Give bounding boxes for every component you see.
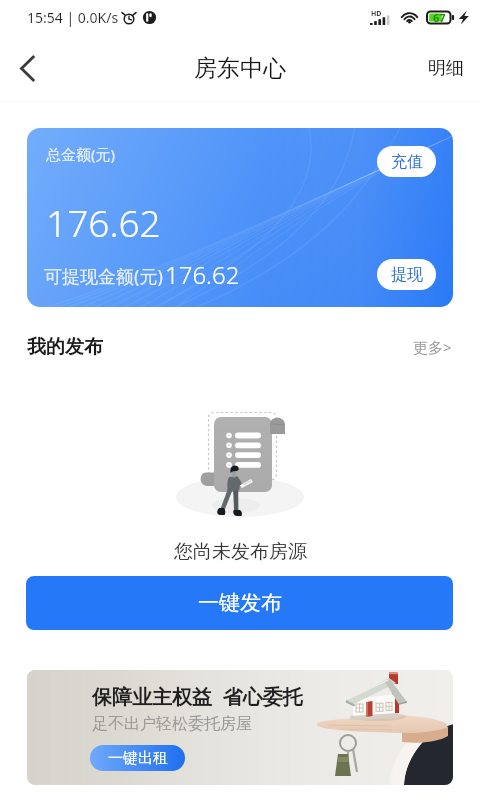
button[interactable]: 明细 [410,41,480,96]
staticText: 可提现金额(元) [44,264,163,289]
button[interactable]: Back [0,41,54,95]
staticText: 您尚未发布房源 [174,540,307,564]
button[interactable]: 提现 [377,259,436,290]
button[interactable]: 更多> [409,333,456,361]
button[interactable]: 保障业主权益 省心委托 [27,670,453,785]
staticText: 我的发布 [27,335,103,359]
staticText: 一键出租 [108,749,168,768]
staticText: 明细 [428,57,464,80]
staticText: 提现 [391,265,423,285]
staticText: 保障业主权益 省心委托 [92,683,303,710]
staticText: 一键发布 [198,590,282,616]
staticText: 176.62 [165,258,240,291]
staticText: 176.62 [46,197,161,247]
staticText: 充值 [391,152,423,172]
staticText: 更多> [413,337,452,357]
button[interactable]: 充值 [377,146,436,177]
staticText: 房东中心 [194,54,286,83]
staticText: 足不出户轻松委托房屋 [92,714,252,734]
staticText: 67 [433,10,446,25]
staticText: 15:54 | 0.0K/s [27,8,119,27]
button[interactable]: 一键发布 [26,576,453,630]
staticText: HD [371,9,382,19]
button[interactable]: 一键出租 [90,745,185,771]
staticText: 总金额(元) [46,144,116,164]
